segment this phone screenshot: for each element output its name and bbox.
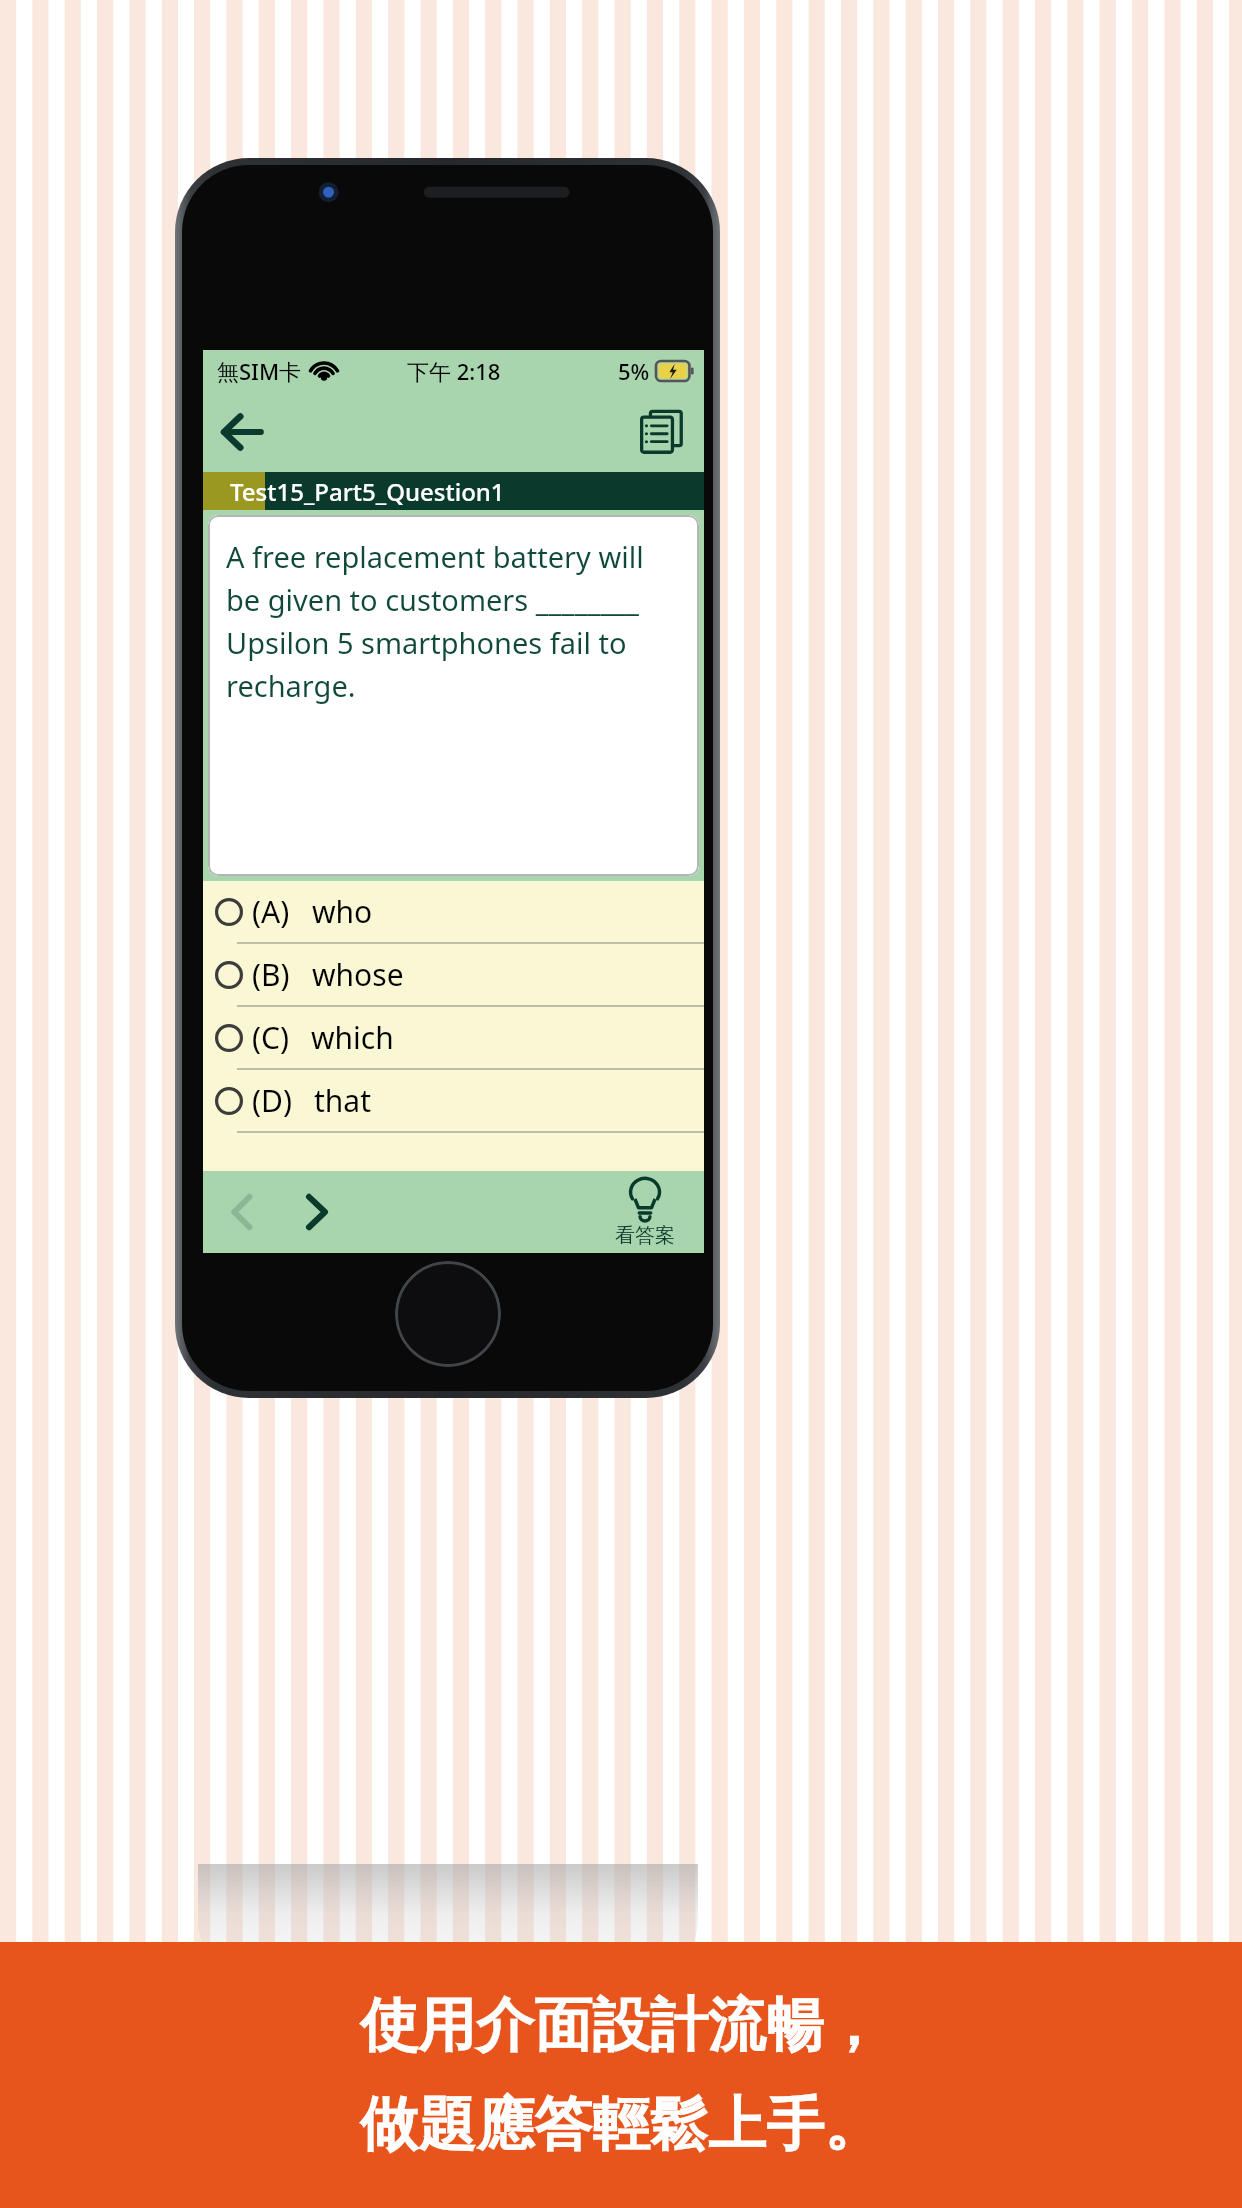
button[interactable]: Back xyxy=(211,401,273,463)
staticText: Test15_Part5_Question1 xyxy=(230,475,505,508)
button[interactable]: Question list xyxy=(630,401,692,463)
staticText: (B) xyxy=(252,954,290,995)
staticText: (D) xyxy=(252,1080,292,1121)
staticText: 使用介面設計流暢， xyxy=(360,1989,882,2062)
staticText: (C) xyxy=(252,1017,289,1058)
button[interactable]: Next question xyxy=(285,1180,349,1244)
staticText: 下午 2:18 xyxy=(407,356,501,386)
staticText: 無SIM卡 xyxy=(217,356,302,386)
staticText: (A) xyxy=(252,891,290,932)
staticText: 做題應答輕鬆上手。 xyxy=(360,2088,882,2161)
staticText: that xyxy=(314,1080,372,1121)
button[interactable]: (A) xyxy=(203,881,704,944)
staticText: 5% xyxy=(618,356,650,386)
staticText: whose xyxy=(312,954,404,995)
staticText: 看答案 xyxy=(615,1223,675,1248)
button[interactable]: (D) xyxy=(203,1070,704,1133)
button[interactable]: 看答案 xyxy=(600,1171,690,1253)
staticText: A free replacement battery will be given… xyxy=(226,537,685,705)
staticText: which xyxy=(311,1017,394,1058)
button[interactable]: (B) xyxy=(203,944,704,1007)
staticText: who xyxy=(312,891,373,932)
button[interactable]: Previous question xyxy=(211,1180,275,1244)
button[interactable]: (C) xyxy=(203,1007,704,1070)
